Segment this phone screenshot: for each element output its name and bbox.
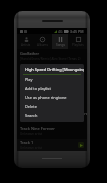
button[interactable]: Tennessee Whiskey Remastered <box>20 80 87 95</box>
button[interactable]: High Speed Drifting [Moongoing] <box>20 65 87 80</box>
staticText: Playlists <box>72 43 84 47</box>
staticText: [Harold/Irons/Remix] Alex Stone (Tenas 2… <box>20 57 81 61</box>
button[interactable]: Track Nine Forever <box>20 125 87 139</box>
staticText: Unknown artist <box>20 132 43 136</box>
button[interactable]: Use as phone ringtone <box>25 93 84 102</box>
staticText: Dubstep mix collection vol 3 <box>20 87 61 91</box>
staticText: Some Artist – Greatest Hits <box>20 102 59 106</box>
button[interactable]: Playlists <box>69 34 87 49</box>
staticText: Track Nine Forever <box>20 126 55 131</box>
staticText: Godfather <box>20 51 40 56</box>
staticText: Albums <box>37 43 48 47</box>
staticText: Use as phone ringtone <box>25 95 67 100</box>
button[interactable]: Artists <box>17 34 34 49</box>
button[interactable]: Search <box>25 111 84 120</box>
staticText: Unknown artist <box>20 146 43 150</box>
button[interactable]: Songs <box>51 34 69 49</box>
staticText: 4G <box>58 29 63 34</box>
button[interactable]: Play <box>78 142 84 148</box>
button[interactable]: Delete <box>25 102 84 111</box>
staticText: ArtistName – Album Name Some <box>20 72 68 76</box>
button[interactable]: Add to playlist <box>25 84 84 93</box>
staticText: Search <box>25 113 38 118</box>
staticText: [Giorgio.infid.St - Muddabardhi Purod... <box>20 111 87 116</box>
button[interactable]: Albums <box>34 34 51 49</box>
button[interactable]: Another Night Out In The City <box>20 95 87 110</box>
button[interactable]: Track 1 <box>17 139 87 151</box>
staticText: Add to playlist <box>25 86 51 91</box>
staticText: Another Night Out In The City <box>20 96 76 101</box>
staticText: 3:45 PM <box>70 29 84 34</box>
staticText: High Speed Drifting [Moongoing] <box>20 66 83 71</box>
staticText: Artists <box>21 43 31 47</box>
button[interactable]: Godfather <box>20 50 87 65</box>
staticText: Play <box>25 77 33 82</box>
staticText: High Speed Drifting [Moongoing] <box>25 67 84 72</box>
button[interactable]: [Giorgio.infid.St - Muddabardhi Purod... <box>20 110 87 125</box>
staticText: Tennessee Whiskey Remastered <box>20 81 80 86</box>
staticText: Songs <box>56 43 65 47</box>
staticText: Track 1 <box>20 140 34 145</box>
staticText: Delete <box>25 104 37 109</box>
button[interactable]: Play <box>25 75 84 84</box>
